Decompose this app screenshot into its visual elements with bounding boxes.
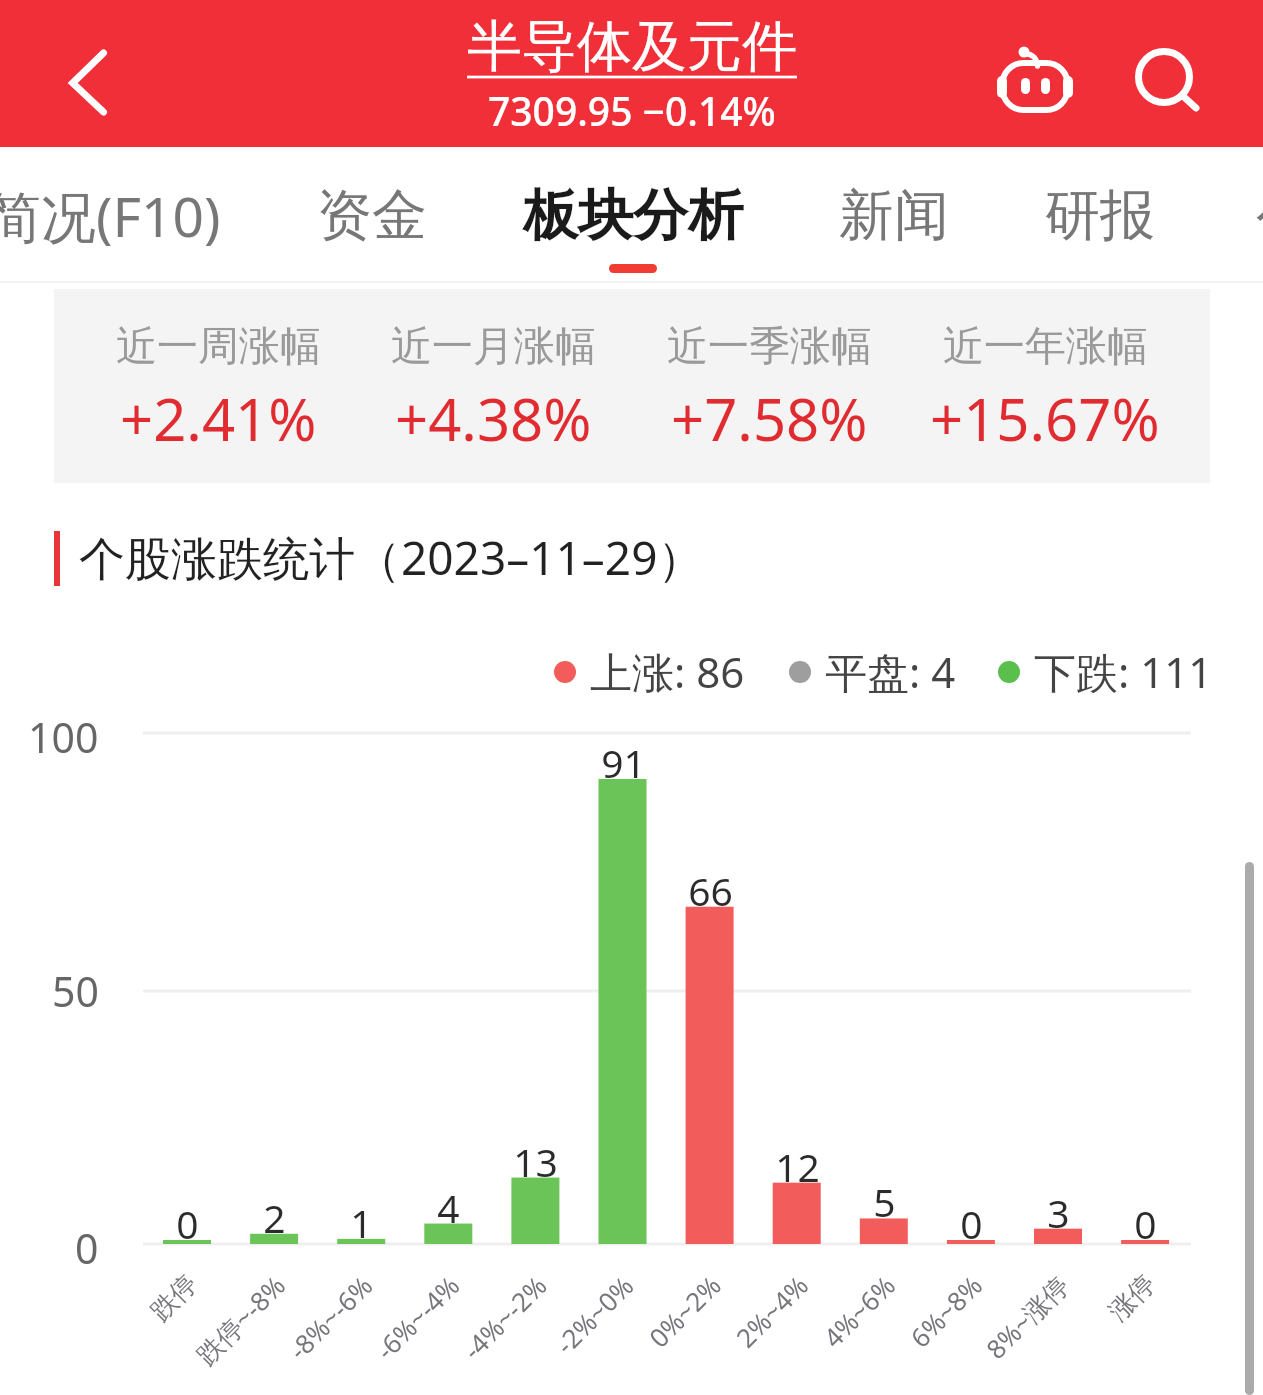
staticText: +7.58% bbox=[671, 379, 868, 458]
staticText: 上涨: 86 bbox=[590, 643, 745, 693]
staticText: 50 bbox=[52, 963, 99, 1017]
button[interactable]: AI assistant bbox=[980, 30, 1080, 130]
button[interactable]: 平盘: 4 bbox=[789, 643, 956, 693]
staticText: 3 bbox=[1047, 1186, 1070, 1239]
staticText: 研报 bbox=[1045, 181, 1153, 250]
staticText: 91 bbox=[601, 736, 646, 789]
staticText: 近一季涨幅 bbox=[667, 321, 872, 373]
staticText: 平盘: 4 bbox=[825, 643, 956, 693]
button[interactable]: 板块分析 bbox=[523, 147, 743, 290]
staticText: 13 bbox=[513, 1135, 558, 1188]
staticText: 66 bbox=[688, 864, 733, 917]
button[interactable]: 近一月涨幅 bbox=[356, 289, 631, 483]
staticText: 0 bbox=[176, 1197, 199, 1250]
staticText: 近一年涨幅 bbox=[943, 321, 1148, 373]
button[interactable]: Search bbox=[1125, 38, 1215, 128]
staticText: 简况(F10) bbox=[0, 178, 221, 253]
button[interactable]: 下跌: 111 bbox=[998, 643, 1213, 693]
staticText: 2 bbox=[263, 1191, 286, 1244]
staticText: 下跌: 111 bbox=[1034, 643, 1213, 693]
staticText: 1 bbox=[350, 1196, 373, 1249]
button[interactable]: 简况(F10) bbox=[0, 147, 221, 290]
button[interactable]: 近一季涨幅 bbox=[631, 289, 907, 483]
staticText: 公告 bbox=[1256, 181, 1263, 250]
button[interactable]: 上涨: 86 bbox=[554, 643, 745, 693]
staticText: 0 bbox=[75, 1220, 99, 1274]
button[interactable]: Back bbox=[34, 28, 134, 128]
staticText: 板块分析 bbox=[523, 181, 743, 250]
staticText: 半导体及元件 bbox=[467, 12, 797, 81]
button[interactable]: 近一周涨幅 bbox=[81, 289, 356, 483]
staticText: 新闻 bbox=[839, 181, 949, 250]
button[interactable]: 研报 bbox=[1045, 147, 1153, 290]
staticText: +2.41% bbox=[120, 379, 317, 458]
button[interactable]: 近一年涨幅 bbox=[907, 289, 1183, 483]
staticText: +15.67% bbox=[930, 379, 1160, 458]
staticText: 100 bbox=[28, 709, 99, 763]
staticText: 0 bbox=[1134, 1197, 1157, 1250]
button[interactable]: 新闻 bbox=[839, 147, 949, 290]
staticText: 0 bbox=[960, 1197, 983, 1250]
staticText: 12 bbox=[775, 1140, 820, 1193]
staticText: 7309.95 −0.14% bbox=[488, 84, 776, 137]
staticText: 5 bbox=[873, 1175, 896, 1228]
staticText: 4 bbox=[437, 1181, 460, 1234]
staticText: 近一周涨幅 bbox=[116, 321, 321, 373]
button[interactable]: 资金 bbox=[317, 147, 427, 290]
staticText: 个股涨跌统计（2023–11–29） bbox=[79, 526, 704, 589]
staticText: +4.38% bbox=[395, 379, 592, 458]
staticText: 近一月涨幅 bbox=[391, 321, 596, 373]
staticText: 资金 bbox=[317, 181, 427, 250]
button[interactable]: 公告 bbox=[1256, 147, 1263, 290]
